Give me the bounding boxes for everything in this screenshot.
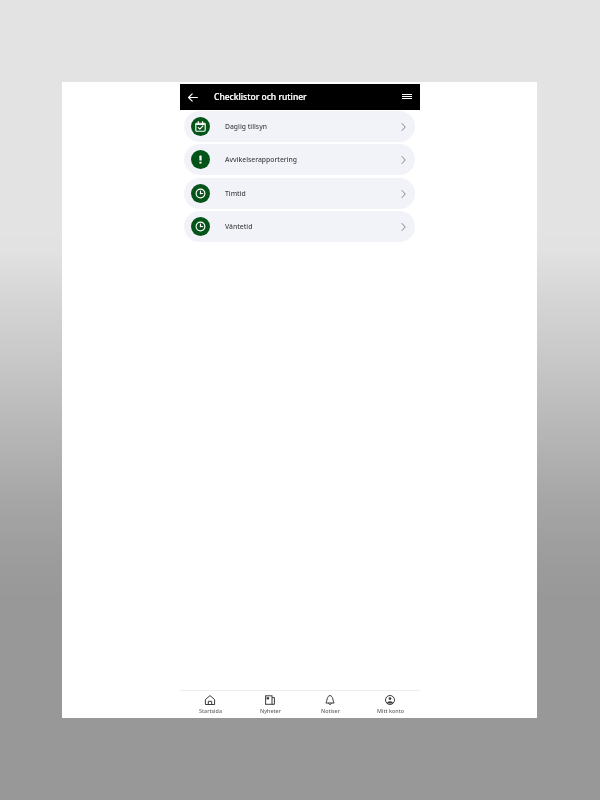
staticText: Daglig tillsyn — [225, 122, 267, 131]
button[interactable]: Menu — [396, 84, 418, 110]
button[interactable]: Startsida — [180, 691, 240, 718]
staticText: Avvikelserapportering — [225, 155, 297, 164]
staticText: Mitt konto — [377, 707, 404, 714]
staticText: Notiser — [321, 707, 340, 714]
button[interactable]: Avvikelserapportering — [184, 144, 415, 175]
button[interactable]: Nyheter — [240, 691, 300, 718]
button[interactable]: Timtid — [184, 178, 415, 209]
button[interactable]: Notiser — [300, 691, 360, 718]
staticText: Startsida — [199, 707, 222, 714]
staticText: Nyheter — [260, 707, 281, 714]
button[interactable]: Daglig tillsyn — [184, 111, 415, 142]
button[interactable]: Mitt konto — [360, 691, 420, 718]
staticText: Checklistor och rutiner — [214, 91, 307, 103]
button[interactable]: Väntetid — [184, 211, 415, 242]
staticText: Väntetid — [225, 222, 253, 231]
staticText: Timtid — [225, 189, 246, 198]
button[interactable]: Back — [180, 84, 206, 110]
